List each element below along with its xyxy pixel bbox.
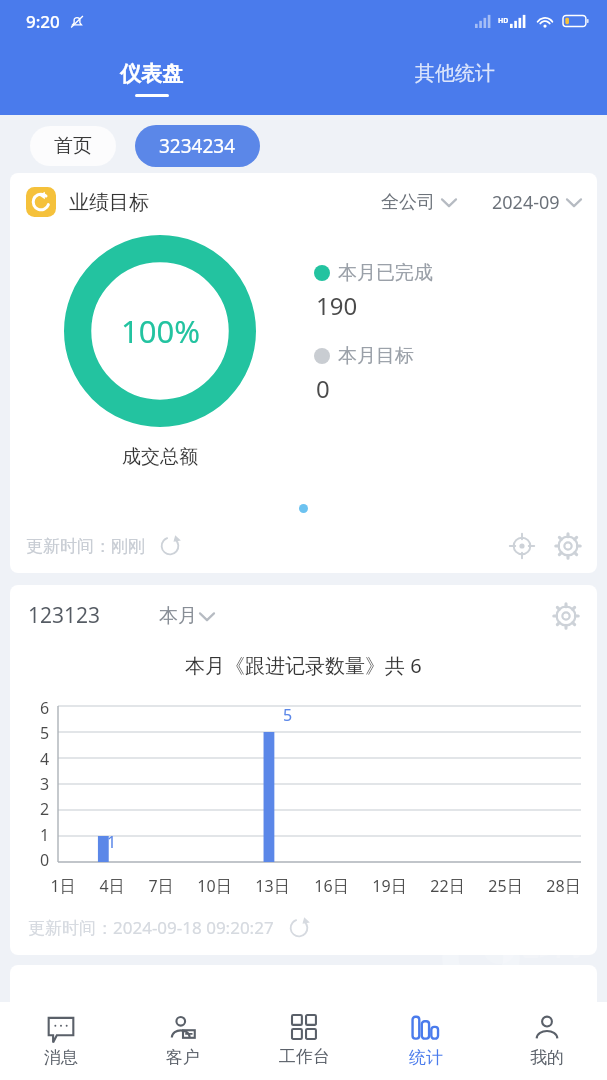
button[interactable]: 3234234: [135, 125, 260, 167]
staticText: 3: [40, 773, 50, 795]
button[interactable]: 我的: [486, 1002, 607, 1080]
staticText: 4日: [99, 875, 125, 897]
staticText: 本月已完成: [338, 261, 433, 285]
staticText: 4: [40, 748, 50, 770]
staticText: 成交总额: [122, 445, 198, 469]
staticText: 客户: [166, 1047, 200, 1068]
staticText: 7日: [148, 875, 174, 897]
staticText: 5: [40, 722, 50, 744]
staticText: 本月目标: [338, 344, 414, 368]
button[interactable]: 本月: [159, 604, 214, 628]
staticText: 9:20: [26, 10, 60, 33]
staticText: 工作台: [279, 1046, 330, 1067]
staticText: 0: [316, 372, 330, 405]
staticText: 123123: [28, 601, 101, 630]
staticText: HD: [498, 16, 509, 26]
staticText: 本月: [159, 604, 197, 628]
button[interactable]: 客户: [122, 1002, 244, 1080]
button[interactable]: Target: [509, 533, 535, 559]
button[interactable]: 消息: [0, 1002, 122, 1080]
button[interactable]: 工作台: [244, 1002, 365, 1080]
button[interactable]: 首页: [30, 126, 116, 166]
staticText: 本月《跟进记录数量》共 6: [185, 652, 422, 679]
staticText: 1: [40, 824, 50, 846]
button[interactable]: Settings: [555, 533, 581, 559]
button[interactable]: 统计: [365, 1002, 486, 1080]
staticText: 25日: [488, 875, 523, 897]
staticText: 13日: [255, 875, 290, 897]
staticText: 其他统计: [415, 61, 495, 86]
button[interactable]: 其他统计: [303, 42, 607, 115]
staticText: 2: [40, 798, 50, 820]
staticText: 16日: [314, 875, 349, 897]
button[interactable]: 2024-09: [492, 190, 581, 215]
staticText: 6: [40, 697, 50, 719]
staticText: 28日: [546, 875, 581, 897]
staticText: 100%: [121, 310, 200, 352]
staticText: 0: [40, 849, 50, 871]
button[interactable]: Settings: [553, 603, 579, 629]
button[interactable]: 全公司: [381, 191, 456, 214]
staticText: 全公司: [381, 191, 435, 214]
staticText: 仪表盘: [120, 61, 183, 87]
staticText: 首页: [54, 134, 92, 158]
staticText: 消息: [44, 1047, 78, 1068]
button[interactable]: 仪表盘: [0, 42, 303, 115]
button[interactable]: Refresh: [159, 535, 181, 557]
staticText: 我的: [530, 1047, 564, 1068]
staticText: 22日: [430, 875, 465, 897]
staticText: 更新时间：2024-09-18 09:20:27: [28, 916, 274, 939]
button[interactable]: Refresh: [288, 917, 310, 939]
staticText: 2024-09: [492, 190, 560, 215]
staticText: 19日: [372, 875, 407, 897]
staticText: 1日: [50, 875, 76, 897]
staticText: 5: [283, 704, 293, 726]
staticText: 190: [316, 289, 358, 322]
staticText: 更新时间：刚刚: [26, 536, 145, 557]
staticText: 七卦子: [513, 930, 591, 963]
staticText: 3234234: [159, 133, 236, 159]
staticText: 1: [107, 831, 117, 853]
staticText: 统计: [409, 1047, 443, 1068]
staticText: 业绩目标: [69, 190, 149, 215]
staticText: 10日: [197, 875, 232, 897]
